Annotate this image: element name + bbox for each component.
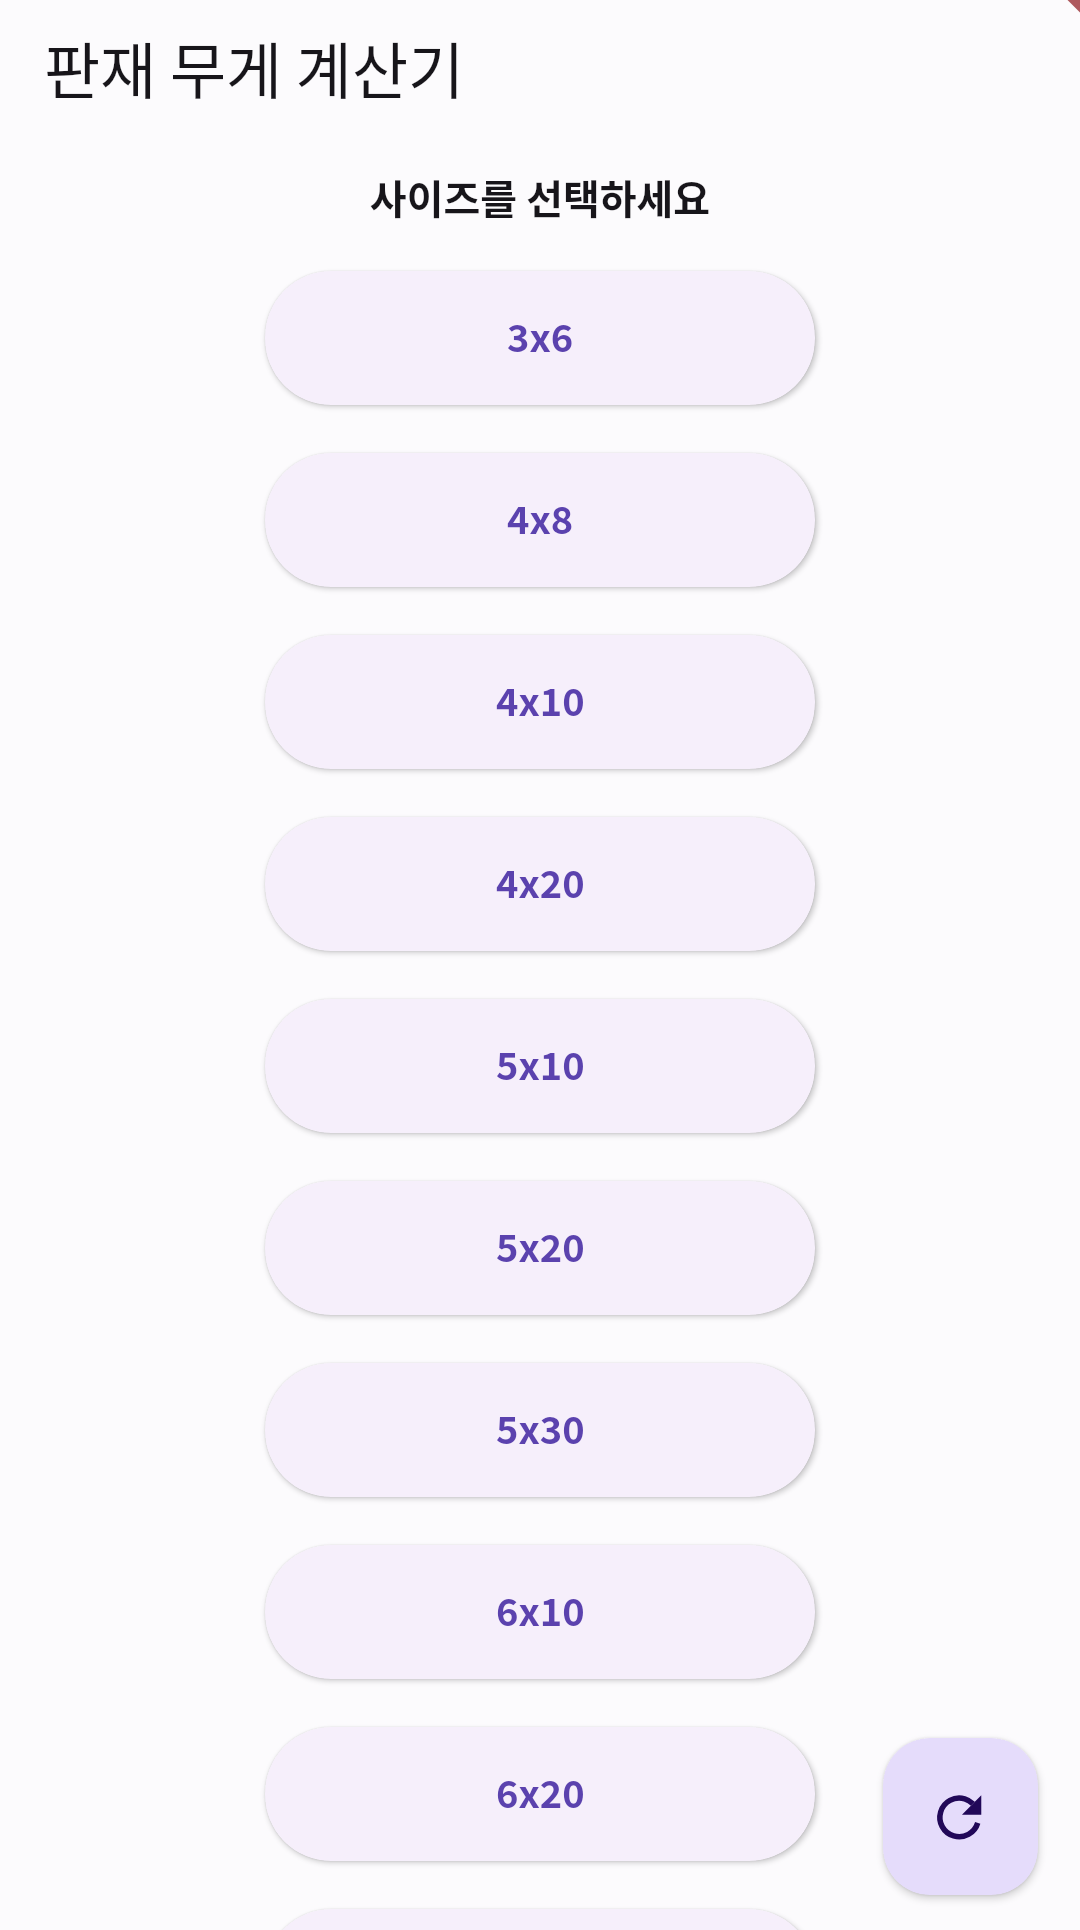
staticText: 3x6 <box>507 308 574 363</box>
button[interactable]: 4x20 <box>265 817 815 951</box>
button[interactable]: 6x20 <box>265 1727 815 1861</box>
staticText: 4x10 <box>496 672 585 727</box>
staticText: 4x8 <box>507 490 574 545</box>
button[interactable]: 5x30 <box>265 1363 815 1497</box>
button[interactable]: 3x6 <box>265 271 815 405</box>
staticText: 5x20 <box>496 1218 585 1273</box>
button[interactable]: 4x8 <box>265 453 815 587</box>
staticText: 6x20 <box>496 1764 585 1819</box>
staticText: 5x10 <box>496 1036 585 1091</box>
button[interactable]: 6x10 <box>265 1545 815 1679</box>
button[interactable]: Refresh <box>883 1738 1038 1895</box>
button[interactable]: 4x10 <box>265 635 815 769</box>
button[interactable]: 6x30 <box>265 1909 815 1930</box>
button[interactable]: 5x10 <box>265 999 815 1133</box>
staticText: 판재 무게 계산기 <box>44 23 465 111</box>
staticText: 4x20 <box>496 854 585 909</box>
button[interactable]: 5x20 <box>265 1181 815 1315</box>
staticText: 사이즈를 선택하세요 <box>0 168 1080 226</box>
staticText: 6x10 <box>496 1582 585 1637</box>
staticText: 5x30 <box>496 1400 585 1455</box>
